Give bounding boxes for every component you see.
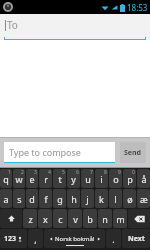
button[interactable]: r [39, 169, 52, 188]
button[interactable]: Shift [0, 209, 22, 228]
staticText: 2 [21, 169, 24, 176]
button[interactable]: h [67, 189, 80, 208]
staticText: f [44, 193, 48, 205]
staticText: b [87, 213, 93, 225]
staticText: 123 [4, 234, 17, 244]
button[interactable]: To [0, 14, 150, 40]
staticText: o [113, 173, 119, 185]
staticText: 7 [90, 169, 93, 176]
staticText: Send [124, 148, 142, 158]
staticText: e [29, 173, 35, 185]
staticText: 5 [62, 169, 65, 176]
button[interactable]: y [67, 169, 80, 188]
staticText: w [15, 173, 23, 185]
button[interactable]: 123 [0, 229, 27, 248]
button[interactable]: ø [123, 189, 136, 208]
staticText: 3 [34, 169, 37, 176]
button[interactable]: u [81, 169, 94, 188]
button[interactable]: j [81, 189, 94, 208]
button[interactable]: k [95, 189, 108, 208]
button[interactable]: , [28, 229, 43, 248]
staticText: 0 [132, 169, 135, 176]
staticText: 4 [48, 169, 51, 176]
staticText: l [114, 193, 117, 205]
button[interactable]: i [95, 169, 108, 188]
staticText: d [29, 193, 35, 205]
staticText: h [71, 193, 77, 205]
button[interactable]: . [106, 229, 121, 248]
staticText: u [85, 173, 91, 185]
button[interactable]: z [23, 209, 37, 228]
button[interactable]: Backspace [128, 209, 150, 228]
staticText: r [44, 173, 48, 185]
staticText: 9 [118, 169, 121, 176]
staticText: z [28, 213, 33, 225]
staticText: ø [127, 193, 133, 205]
staticText: 18:53 [127, 2, 148, 13]
button[interactable]: q [0, 169, 12, 188]
button[interactable]: c [53, 209, 67, 228]
staticText: i [100, 173, 103, 185]
staticText: m [116, 213, 125, 225]
button[interactable]: å [137, 169, 150, 188]
button[interactable]: m [113, 209, 127, 228]
button[interactable]: g [53, 189, 66, 208]
button[interactable]: b [83, 209, 97, 228]
button[interactable]: p [123, 169, 136, 188]
button[interactable]: n [98, 209, 112, 228]
button[interactable]: e [26, 169, 38, 188]
staticText: s [17, 193, 22, 205]
staticText: Norsk bokmål [55, 235, 95, 243]
button[interactable]: d [26, 189, 38, 208]
button[interactable]: f [39, 189, 52, 208]
button[interactable]: t [53, 169, 66, 188]
button[interactable]: a [0, 189, 12, 208]
staticText: 8 [104, 169, 107, 176]
staticText: 6 [76, 169, 79, 176]
button[interactable]: Norsk bokmål [44, 229, 105, 248]
staticText: Next [128, 234, 145, 244]
staticText: å [141, 173, 147, 185]
button[interactable]: l [109, 189, 122, 208]
staticText: t [58, 173, 62, 185]
staticText: Type to compose [9, 146, 81, 158]
button[interactable]: Send [120, 142, 146, 163]
staticText: To [7, 18, 18, 32]
staticText: c [58, 213, 63, 225]
staticText: v [73, 213, 78, 225]
button[interactable]: w [13, 169, 25, 188]
button[interactable]: v [68, 209, 82, 228]
button[interactable]: Next [122, 229, 150, 248]
staticText: æ [140, 193, 148, 205]
staticText: k [99, 193, 104, 205]
staticText: , [34, 233, 37, 245]
staticText: n [102, 213, 108, 225]
staticText: 1 [8, 169, 11, 176]
staticText: x [43, 213, 48, 225]
button[interactable]: æ [137, 189, 150, 208]
staticText: . [112, 233, 115, 245]
button[interactable]: o [109, 169, 122, 188]
button[interactable]: s [13, 189, 25, 208]
button[interactable]: x [38, 209, 52, 228]
staticText: g [57, 193, 63, 205]
staticText: p [127, 173, 133, 185]
staticText: a [3, 193, 9, 205]
button[interactable]: Type to compose [4, 142, 115, 163]
staticText: y [71, 173, 76, 185]
staticText: q [3, 173, 9, 185]
staticText: j [86, 193, 89, 205]
